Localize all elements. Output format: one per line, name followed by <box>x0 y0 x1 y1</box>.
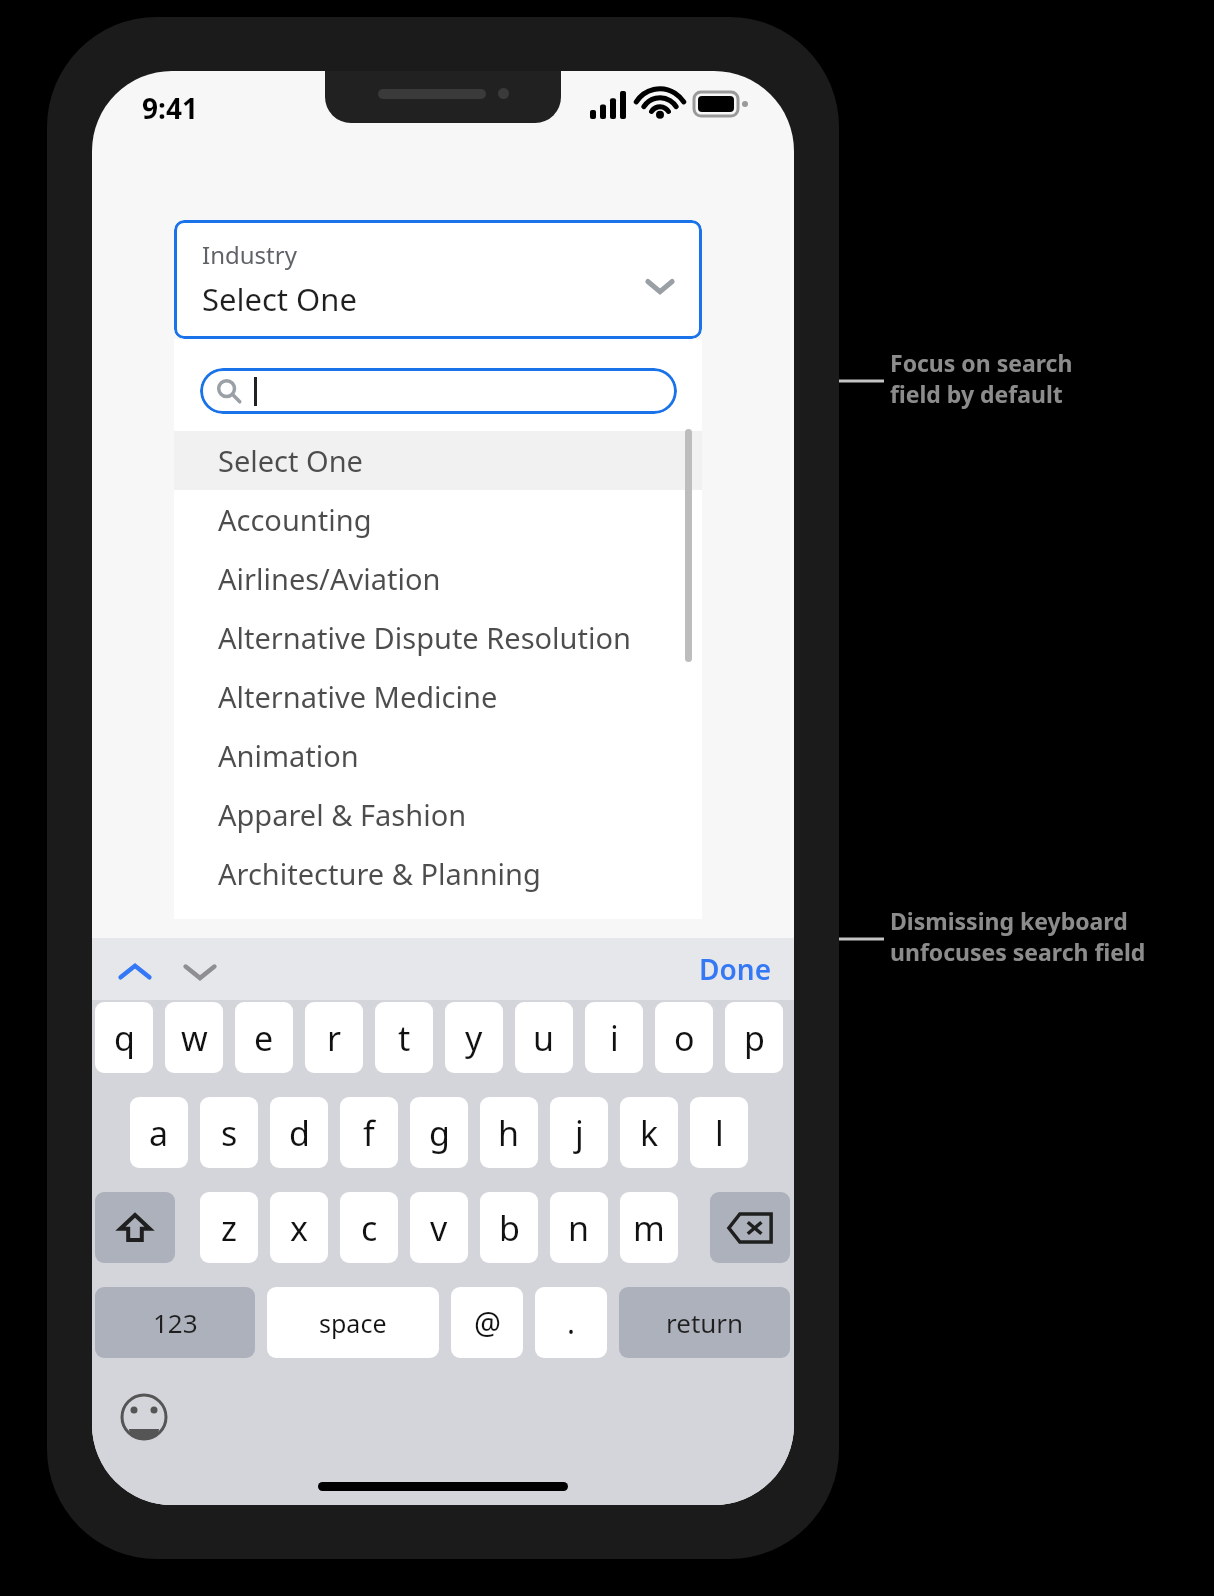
staticText: Select One <box>218 441 363 480</box>
button[interactable]: space <box>267 1287 439 1358</box>
button[interactable]: z <box>200 1192 258 1263</box>
staticText: Dismissing keyboard <box>890 905 1128 936</box>
staticText: g <box>429 1110 450 1156</box>
staticText: v <box>430 1205 448 1251</box>
staticText: Industry <box>202 238 297 271</box>
button[interactable]: d <box>270 1097 328 1168</box>
button[interactable]: o <box>655 1002 713 1073</box>
staticText: r <box>327 1015 342 1061</box>
staticText: e <box>254 1015 274 1061</box>
staticText: Alternative Medicine <box>218 677 498 716</box>
staticText: f <box>363 1110 375 1156</box>
button[interactable]: Animation <box>174 726 702 785</box>
button[interactable]: return <box>619 1287 790 1358</box>
staticText: l <box>715 1110 724 1156</box>
staticText: Alternative Dispute Resolution <box>218 618 631 657</box>
button[interactable]: v <box>410 1192 468 1263</box>
button[interactable]: Done <box>699 950 772 988</box>
button[interactable]: q <box>95 1002 153 1073</box>
button[interactable]: t <box>375 1002 433 1073</box>
button[interactable]: p <box>725 1002 783 1073</box>
button[interactable]: Architecture & Planning <box>174 844 702 903</box>
button[interactable]: Backspace <box>710 1192 790 1263</box>
button[interactable]: @ <box>451 1287 523 1358</box>
button[interactable]: l <box>690 1097 748 1168</box>
staticText: d <box>289 1110 310 1156</box>
staticText: @ <box>474 1302 501 1343</box>
button[interactable]: b <box>480 1192 538 1263</box>
staticText: . <box>567 1302 576 1343</box>
button[interactable]: e <box>235 1002 293 1073</box>
button[interactable]: f <box>340 1097 398 1168</box>
button[interactable]: Emoji <box>120 1393 168 1441</box>
button[interactable]: Shift <box>95 1192 175 1263</box>
staticText: Select One <box>202 278 357 320</box>
button[interactable]: Alternative Medicine <box>174 667 702 726</box>
button[interactable]: n <box>550 1192 608 1263</box>
button[interactable]: j <box>550 1097 608 1168</box>
button[interactable]: r <box>305 1002 363 1073</box>
staticText: u <box>533 1015 555 1061</box>
button[interactable]: y <box>445 1002 503 1073</box>
staticText: space <box>319 1306 387 1340</box>
button[interactable]: Select One <box>174 431 702 490</box>
staticText: 123 <box>153 1305 198 1340</box>
staticText: w <box>181 1015 208 1061</box>
staticText: Apparel & Fashion <box>218 795 467 834</box>
staticText: h <box>498 1110 520 1156</box>
button[interactable]: c <box>340 1192 398 1263</box>
staticText: q <box>114 1015 135 1061</box>
staticText: Focus on search <box>890 347 1073 378</box>
button[interactable]: m <box>620 1192 678 1263</box>
staticText: x <box>290 1205 308 1251</box>
staticText: unfocuses search field <box>890 936 1146 967</box>
staticText: Animation <box>218 736 359 775</box>
staticText: 9:41 <box>142 89 198 127</box>
staticText: p <box>744 1015 765 1061</box>
button[interactable]: Accounting <box>174 490 702 549</box>
staticText: Airlines/Aviation <box>218 559 441 598</box>
staticText: a <box>149 1110 169 1156</box>
staticText: n <box>568 1205 590 1251</box>
button[interactable]: Industry <box>174 220 702 339</box>
button[interactable]: k <box>620 1097 678 1168</box>
staticText: s <box>221 1110 238 1156</box>
button[interactable]: w <box>165 1002 223 1073</box>
staticText: i <box>610 1015 619 1061</box>
staticText: y <box>465 1015 483 1061</box>
button[interactable]: i <box>585 1002 643 1073</box>
staticText: c <box>361 1205 378 1251</box>
button[interactable]: Alternative Dispute Resolution <box>174 608 702 667</box>
button[interactable] <box>200 368 677 414</box>
button[interactable]: Airlines/Aviation <box>174 549 702 608</box>
button[interactable]: u <box>515 1002 573 1073</box>
button[interactable]: g <box>410 1097 468 1168</box>
staticText: return <box>666 1305 744 1340</box>
button[interactable]: h <box>480 1097 538 1168</box>
staticText: b <box>499 1205 520 1251</box>
staticText: z <box>221 1205 237 1251</box>
button[interactable]: x <box>270 1192 328 1263</box>
staticText: t <box>398 1015 411 1061</box>
button[interactable]: Previous field <box>117 955 153 991</box>
staticText: Architecture & Planning <box>218 854 541 893</box>
button[interactable]: . <box>535 1287 607 1358</box>
staticText: o <box>674 1015 695 1061</box>
button[interactable]: 123 <box>95 1287 255 1358</box>
staticText: j <box>575 1110 584 1156</box>
staticText: m <box>633 1205 665 1251</box>
button[interactable]: Next field <box>182 955 218 991</box>
staticText: k <box>640 1110 659 1156</box>
button[interactable]: Apparel & Fashion <box>174 785 702 844</box>
button[interactable]: a <box>130 1097 188 1168</box>
staticText: Done <box>699 950 772 988</box>
button[interactable]: s <box>200 1097 258 1168</box>
staticText: field by default <box>890 378 1063 409</box>
staticText: Accounting <box>218 500 372 539</box>
